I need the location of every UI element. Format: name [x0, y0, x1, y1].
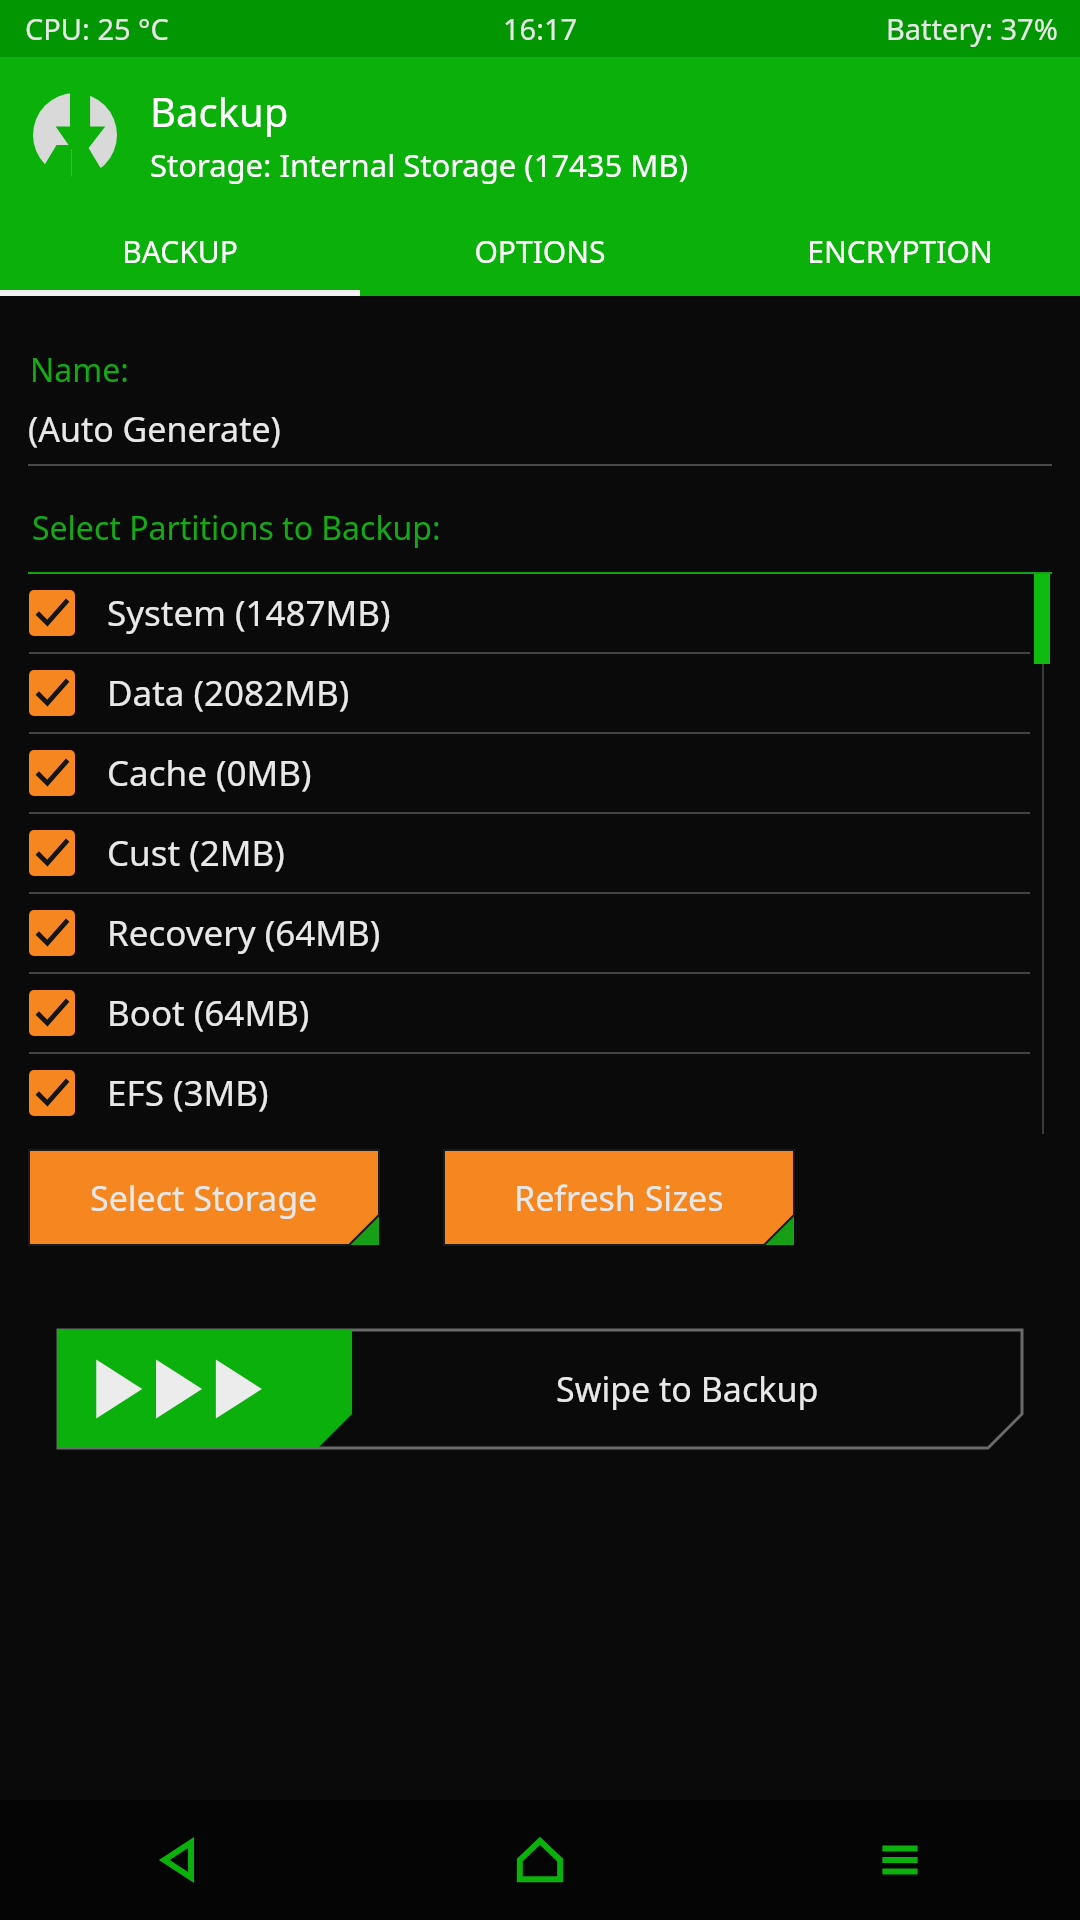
button[interactable]: System (1487MB): [0, 574, 1080, 654]
button[interactable]: Boot (64MB): [0, 974, 1080, 1054]
button[interactable]: EFS (3MB): [0, 1054, 1080, 1132]
button[interactable]: Select Storage: [29, 1150, 379, 1245]
staticText: BACKUP: [122, 231, 238, 272]
button[interactable]: (Auto Generate): [28, 406, 281, 452]
staticText: Boot (64MB): [107, 989, 310, 1037]
staticText: Backup: [150, 84, 289, 138]
staticText: System (1487MB): [107, 589, 391, 637]
button[interactable]: Swipe to Backup: [58, 1330, 1022, 1448]
button[interactable]: Home: [360, 1800, 720, 1920]
staticText: ENCRYPTION: [807, 231, 993, 272]
button[interactable]: OPTIONS: [360, 212, 720, 290]
staticText: EFS (3MB): [107, 1069, 269, 1117]
button[interactable]: Data (2082MB): [0, 654, 1080, 734]
staticText: Recovery (64MB): [107, 909, 381, 957]
staticText: Data (2082MB): [107, 669, 350, 717]
staticText: Select Partitions to Backup:: [32, 506, 441, 550]
staticText: Storage: Internal Storage (17435 MB): [150, 144, 688, 186]
staticText: Select Storage: [90, 1175, 318, 1221]
staticText: Cache (0MB): [107, 749, 312, 797]
button[interactable]: Cache (0MB): [0, 734, 1080, 814]
staticText: Cust (2MB): [107, 829, 285, 877]
button[interactable]: Refresh Sizes: [444, 1150, 794, 1245]
button[interactable]: Cust (2MB): [0, 814, 1080, 894]
staticText: CPU: 25 °C: [25, 9, 169, 48]
staticText: 16:17: [503, 9, 578, 48]
button[interactable]: Menu: [720, 1800, 1080, 1920]
staticText: OPTIONS: [474, 231, 606, 272]
staticText: Battery: 37%: [886, 9, 1058, 48]
button[interactable]: Recovery (64MB): [0, 894, 1080, 974]
button[interactable]: ENCRYPTION: [720, 212, 1080, 290]
staticText: Name:: [30, 348, 129, 392]
button[interactable]: Back: [0, 1800, 360, 1920]
staticText: Swipe to Backup: [556, 1366, 819, 1412]
button[interactable]: BACKUP: [0, 212, 360, 290]
staticText: Refresh Sizes: [514, 1175, 724, 1221]
